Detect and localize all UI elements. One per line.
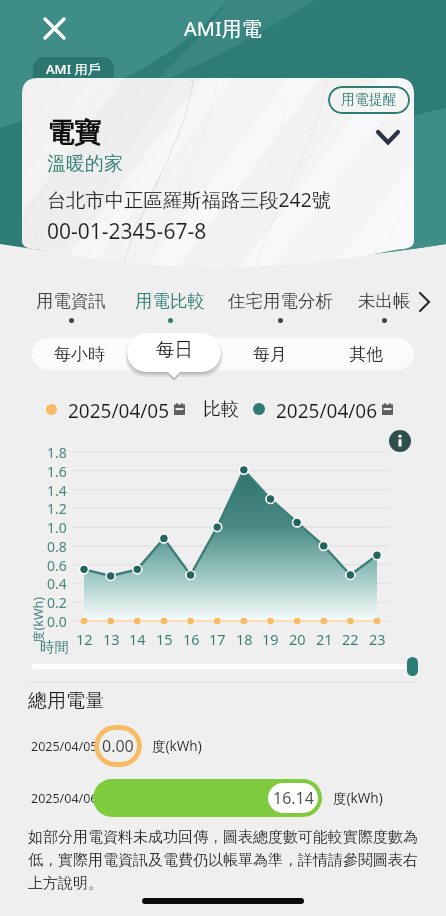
button[interactable]: Info (389, 430, 411, 452)
staticText: 每日 (156, 338, 193, 361)
staticText: 14 (129, 629, 146, 649)
button[interactable]: More tabs (412, 290, 436, 314)
staticText: 1.8 (47, 443, 67, 461)
staticText: 1.2 (47, 499, 67, 517)
button[interactable]: 16.14 (93, 779, 322, 817)
staticText: 每月 (253, 344, 287, 364)
button[interactable]: Expand account (372, 121, 404, 153)
staticText: 度(kWh) (30, 596, 47, 643)
staticText: AMI用電 (184, 15, 262, 42)
staticText: 如部分用電資料未成功回傳，圖表總度數可能較實際度數為低，實際用電資訊及電費仍以帳… (28, 828, 424, 893)
staticText: 住宅用電分析 (228, 290, 333, 312)
button[interactable]: 每月 (247, 338, 293, 370)
staticText: 0.4 (47, 574, 67, 592)
staticText: 0.00 (102, 735, 134, 757)
button[interactable]: Close (38, 12, 71, 45)
staticText: 時間 (40, 638, 69, 656)
staticText: 20 (289, 629, 306, 649)
button[interactable]: 其他 (343, 338, 389, 370)
staticText: 電寶 (47, 116, 101, 150)
staticText: 比較 (203, 398, 239, 420)
staticText: 12 (76, 629, 93, 649)
button[interactable]: Pick start date (174, 403, 185, 415)
staticText: 16 (183, 629, 200, 649)
staticText: 2025/04/05 (68, 398, 170, 420)
button[interactable]: 每日 (127, 333, 221, 365)
button[interactable]: Pick end date (382, 403, 393, 415)
staticText: 每小時 (54, 344, 105, 364)
staticText: 1.6 (47, 462, 67, 480)
staticText: 總用電量 (28, 689, 104, 713)
button[interactable]: 未出帳 (358, 290, 411, 323)
staticText: 16.14 (273, 787, 314, 809)
staticText: 0.6 (47, 556, 67, 574)
staticText: 21 (316, 629, 333, 649)
button[interactable]: 每小時 (48, 338, 111, 370)
staticText: 2025/04/05 (31, 738, 98, 755)
staticText: 台北市中正區羅斯福路三段242號 (47, 186, 331, 212)
staticText: 用電比較 (135, 290, 205, 312)
staticText: 1.4 (47, 481, 67, 499)
staticText: AMI 用戶 (46, 60, 101, 78)
staticText: 0.0 (47, 612, 67, 630)
staticText: 溫暖的家 (47, 152, 123, 176)
staticText: 未出帳 (358, 290, 411, 312)
staticText: 2025/04/06 (31, 790, 98, 807)
staticText: 13 (103, 629, 120, 649)
staticText: 度(kWh) (333, 789, 383, 807)
staticText: 17 (209, 629, 226, 649)
staticText: 18 (236, 629, 253, 649)
staticText: 其他 (349, 344, 383, 364)
staticText: 00-01-2345-67-8 (47, 217, 207, 246)
staticText: 23 (369, 629, 386, 649)
staticText: 15 (156, 629, 173, 649)
staticText: 0.8 (47, 537, 67, 555)
staticText: 2025/04/06 (276, 398, 378, 420)
staticText: 用電資訊 (36, 290, 106, 312)
button[interactable]: 用電提醒 (328, 86, 410, 114)
staticText: 度(kWh) (152, 737, 202, 755)
button[interactable]: 0.00 (94, 725, 142, 767)
staticText: 22 (342, 629, 359, 649)
staticText: 19 (262, 629, 279, 649)
button[interactable]: AMI 用戶 (33, 57, 114, 85)
button[interactable]: 用電資訊 (36, 290, 106, 323)
staticText: 0.2 (47, 593, 67, 611)
button[interactable]: 住宅用電分析 (228, 290, 333, 323)
staticText: 用電提醒 (341, 91, 397, 109)
staticText: 1.0 (47, 518, 67, 536)
button[interactable]: 用電比較 (135, 290, 205, 323)
